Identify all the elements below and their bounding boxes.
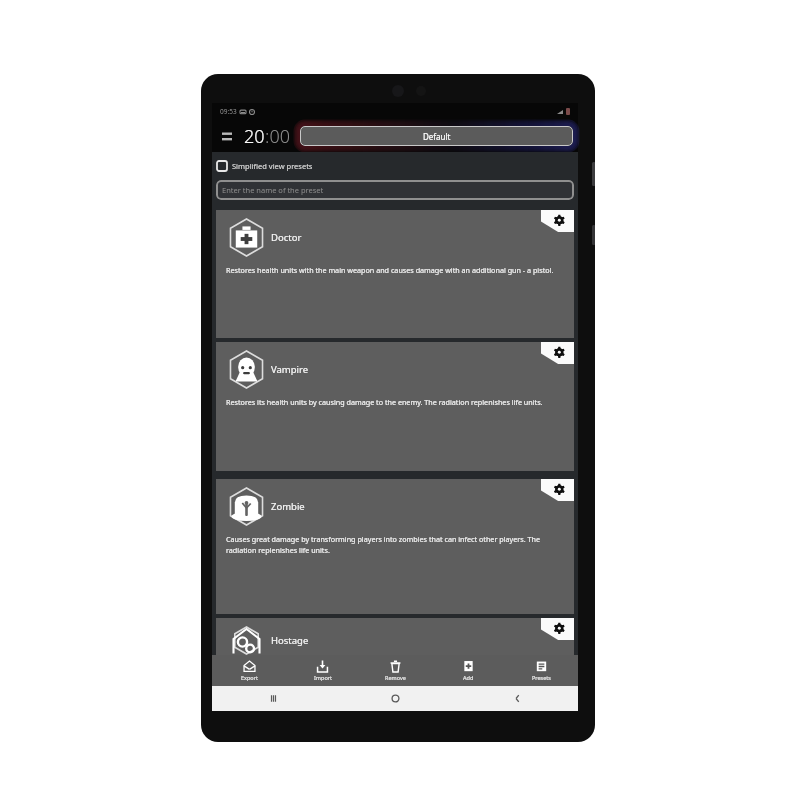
button[interactable]: Settings <box>541 342 574 364</box>
staticText: 09:53 <box>220 107 237 116</box>
button[interactable]: Enter the name of the preset <box>216 180 574 200</box>
button[interactable]: Settings <box>541 618 574 640</box>
button[interactable]: Default <box>300 126 573 146</box>
button[interactable]: Back <box>456 686 578 711</box>
staticText: Hostage <box>271 634 309 647</box>
button[interactable]: Export <box>212 655 286 686</box>
button[interactable]: Home <box>334 686 456 711</box>
staticText: Causes great damage by transforming play… <box>226 534 556 555</box>
button[interactable]: Doctor <box>216 210 574 338</box>
staticText: Zombie <box>271 500 305 513</box>
button[interactable]: Settings <box>541 210 574 232</box>
button[interactable]: Presets <box>505 655 578 686</box>
button[interactable]: Add <box>432 655 505 686</box>
button[interactable]: Simplified view presets <box>212 152 578 180</box>
button[interactable]: Vampire <box>216 342 574 471</box>
staticText: Simplified view presets <box>232 161 313 171</box>
button[interactable]: Menu <box>217 126 237 146</box>
button[interactable]: Hostage <box>216 618 574 655</box>
button[interactable]: Recents <box>212 686 334 711</box>
staticText: Enter the name of the preset <box>222 185 324 195</box>
staticText: Vampire <box>271 363 309 376</box>
staticText: Presets <box>532 674 551 681</box>
staticText: Default <box>423 131 451 142</box>
button[interactable]: Import <box>286 655 359 686</box>
staticText: Doctor <box>271 231 302 244</box>
staticText: Restores health units with the main weap… <box>226 265 554 275</box>
staticText: Restores its health units by causing dam… <box>226 397 543 407</box>
staticText: Import <box>314 674 332 681</box>
staticText: Add <box>463 674 474 681</box>
button[interactable]: Remove <box>359 655 432 686</box>
button[interactable]: Settings <box>541 479 574 501</box>
staticText: 20 <box>244 124 265 149</box>
button[interactable]: Zombie <box>216 479 574 614</box>
staticText: :00 <box>265 124 290 149</box>
staticText: Remove <box>385 674 406 681</box>
staticText: Export <box>241 674 258 681</box>
